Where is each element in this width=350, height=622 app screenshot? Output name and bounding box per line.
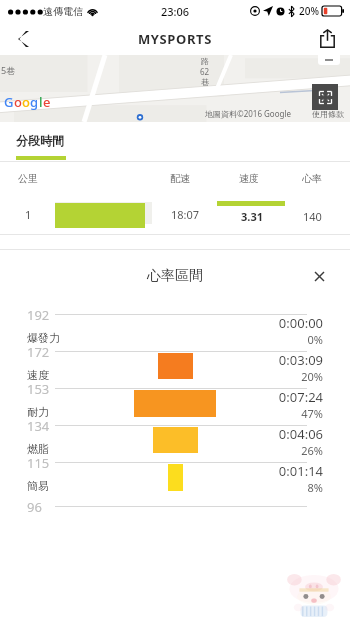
staticText: 公里	[18, 172, 38, 185]
staticText: 耐力	[27, 405, 49, 419]
staticText: e	[43, 93, 51, 111]
staticText: 心率區間	[147, 267, 203, 285]
staticText: 0:01:14	[278, 462, 323, 480]
button[interactable]: 153	[0, 387, 350, 424]
staticText: 0%	[307, 332, 323, 347]
staticText: 134	[27, 417, 50, 435]
staticText: 簡易	[27, 479, 49, 493]
staticText: 0:07:24	[278, 388, 323, 406]
staticText: l	[39, 93, 43, 111]
staticText: 心率	[302, 172, 322, 185]
staticText: 速度	[27, 368, 49, 382]
staticText: 26%	[301, 443, 323, 458]
staticText: 8%	[307, 480, 323, 495]
staticText: 地圖資料©2016 Google	[205, 108, 292, 119]
staticText: 96	[27, 498, 42, 516]
staticText: 62	[200, 66, 210, 77]
button[interactable]: Share	[304, 22, 350, 55]
staticText: 遠傳電信	[43, 5, 83, 18]
staticText: 140	[303, 209, 322, 224]
staticText: o	[14, 93, 22, 111]
staticText: g	[30, 93, 39, 111]
staticText: 47%	[301, 406, 323, 421]
staticText: 使用條款	[312, 109, 344, 119]
staticText: o	[22, 93, 30, 111]
staticText: 18:07	[171, 207, 200, 222]
staticText: 分段時間	[16, 133, 64, 148]
staticText: 153	[27, 380, 50, 398]
staticText: 20%	[301, 369, 323, 384]
staticText: 路	[201, 56, 209, 66]
button[interactable]: Zoom out	[318, 55, 340, 65]
staticText: 速度	[239, 172, 259, 185]
staticText: 20%	[299, 4, 319, 18]
staticText: 5巷	[1, 64, 16, 76]
button[interactable]: 172	[0, 350, 350, 387]
staticText: 0:03:09	[278, 351, 323, 369]
staticText: MYSPORTS	[138, 30, 212, 48]
staticText: 3.31	[241, 209, 263, 224]
staticText: 0:00:00	[278, 314, 323, 332]
button[interactable]: 115	[0, 461, 350, 498]
staticText: 172	[27, 343, 50, 361]
button[interactable]: Expand map	[312, 84, 338, 110]
staticText: 192	[27, 306, 50, 324]
button[interactable]: Close	[308, 265, 330, 287]
staticText: 配速	[170, 172, 190, 185]
staticText: G	[4, 93, 14, 111]
button[interactable]: Back	[0, 22, 46, 55]
staticText: 23:06	[161, 4, 190, 19]
button[interactable]: 192	[0, 313, 350, 350]
staticText: 0:04:06	[278, 425, 323, 443]
staticText: 爆發力	[27, 331, 60, 345]
staticText: 115	[27, 454, 50, 472]
staticText: 燃脂	[27, 442, 49, 456]
staticText: 1	[25, 207, 32, 222]
button[interactable]: 1	[0, 194, 350, 234]
staticText: 巷	[201, 77, 209, 87]
button[interactable]: 134	[0, 424, 350, 461]
